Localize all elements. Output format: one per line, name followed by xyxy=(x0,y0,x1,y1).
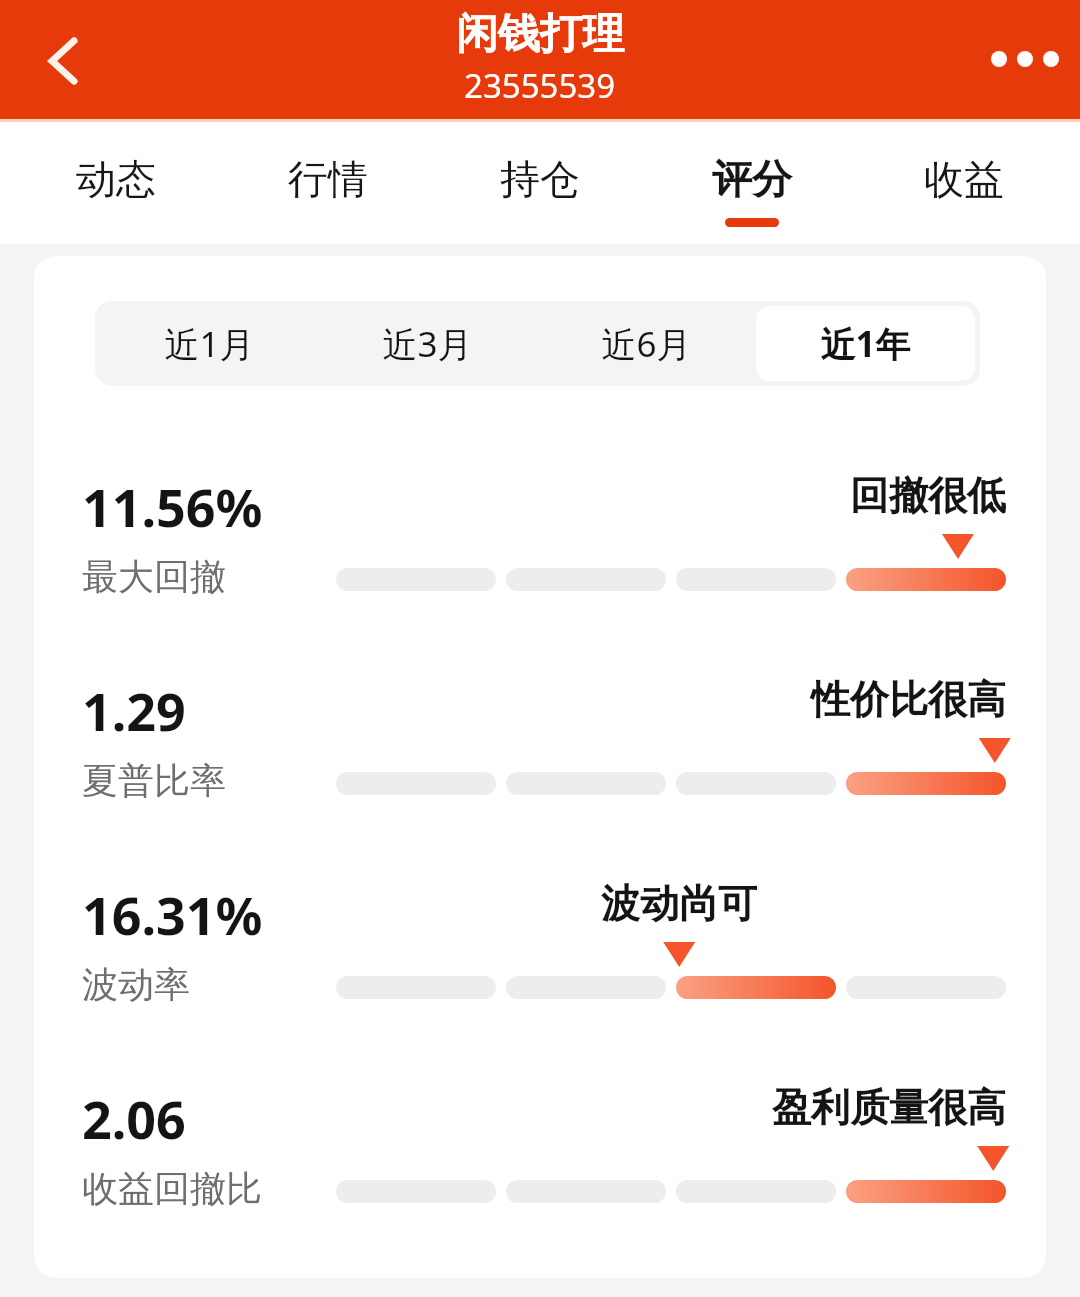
staticText: 收益回撤比 xyxy=(82,1166,262,1209)
staticText: 2.06 xyxy=(82,1083,186,1154)
button[interactable]: Back xyxy=(22,19,106,103)
staticText: 行情 xyxy=(288,154,368,204)
staticText: 近3月 xyxy=(382,320,473,368)
button[interactable]: 动态 xyxy=(10,122,222,244)
staticText: 闲钱打理 xyxy=(456,8,624,61)
staticText: 1.29 xyxy=(82,675,186,746)
button[interactable]: 近1月 xyxy=(100,306,318,381)
staticText: 波动尚可 xyxy=(601,879,757,928)
button[interactable]: 11.56% xyxy=(34,471,1046,597)
button[interactable]: 近1年 xyxy=(756,306,975,381)
button[interactable]: 近6月 xyxy=(537,306,756,381)
staticText: 23555539 xyxy=(464,63,616,108)
staticText: 近1月 xyxy=(164,320,255,368)
staticText: 近6月 xyxy=(601,320,692,368)
staticText: 近1年 xyxy=(820,320,911,368)
button[interactable]: 收益 xyxy=(858,122,1070,244)
button[interactable]: More options xyxy=(970,19,1080,99)
button[interactable]: 2.06 xyxy=(34,1083,1046,1209)
staticText: 波动率 xyxy=(82,962,190,1005)
button[interactable]: 16.31% xyxy=(34,879,1046,1005)
button[interactable]: 行情 xyxy=(222,122,434,244)
staticText: 性价比很高 xyxy=(811,675,1006,724)
staticText: 收益 xyxy=(924,154,1004,204)
staticText: 最大回撤 xyxy=(82,554,226,597)
staticText: 评分 xyxy=(712,154,792,204)
staticText: 持仓 xyxy=(500,154,580,204)
staticText: 盈利质量很高 xyxy=(772,1083,1006,1132)
staticText: 动态 xyxy=(76,154,156,204)
staticText: 回撤很低 xyxy=(850,471,1006,520)
staticText: 11.56% xyxy=(82,471,263,542)
button[interactable]: 近3月 xyxy=(318,306,537,381)
staticText: 16.31% xyxy=(82,879,263,950)
button[interactable]: 评分 xyxy=(646,122,858,244)
button[interactable]: 1.29 xyxy=(34,675,1046,801)
staticText: 夏普比率 xyxy=(82,758,226,801)
button[interactable]: 持仓 xyxy=(434,122,646,244)
